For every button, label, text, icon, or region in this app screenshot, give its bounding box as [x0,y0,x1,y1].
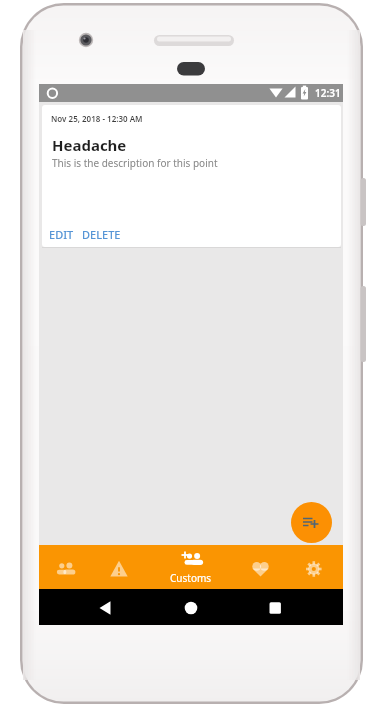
staticText: Customs [170,571,212,585]
staticText: Headache [52,135,127,155]
staticText: DELETE [82,227,121,242]
button[interactable] [242,589,343,625]
button[interactable] [160,545,221,589]
button[interactable] [282,545,343,589]
button[interactable] [99,545,160,589]
button[interactable] [291,502,332,543]
button[interactable]: DELETE [80,225,123,244]
button[interactable] [39,545,99,589]
button[interactable]: EDIT [47,225,76,244]
button[interactable] [141,589,242,625]
button[interactable] [221,545,282,589]
staticText: 12:31 [315,86,341,100]
staticText: EDIT [49,227,74,242]
button[interactable] [39,589,141,625]
staticText: This is the description for this point [52,156,218,170]
staticText: Nov 25, 2018 - 12:30 AM [51,113,143,124]
